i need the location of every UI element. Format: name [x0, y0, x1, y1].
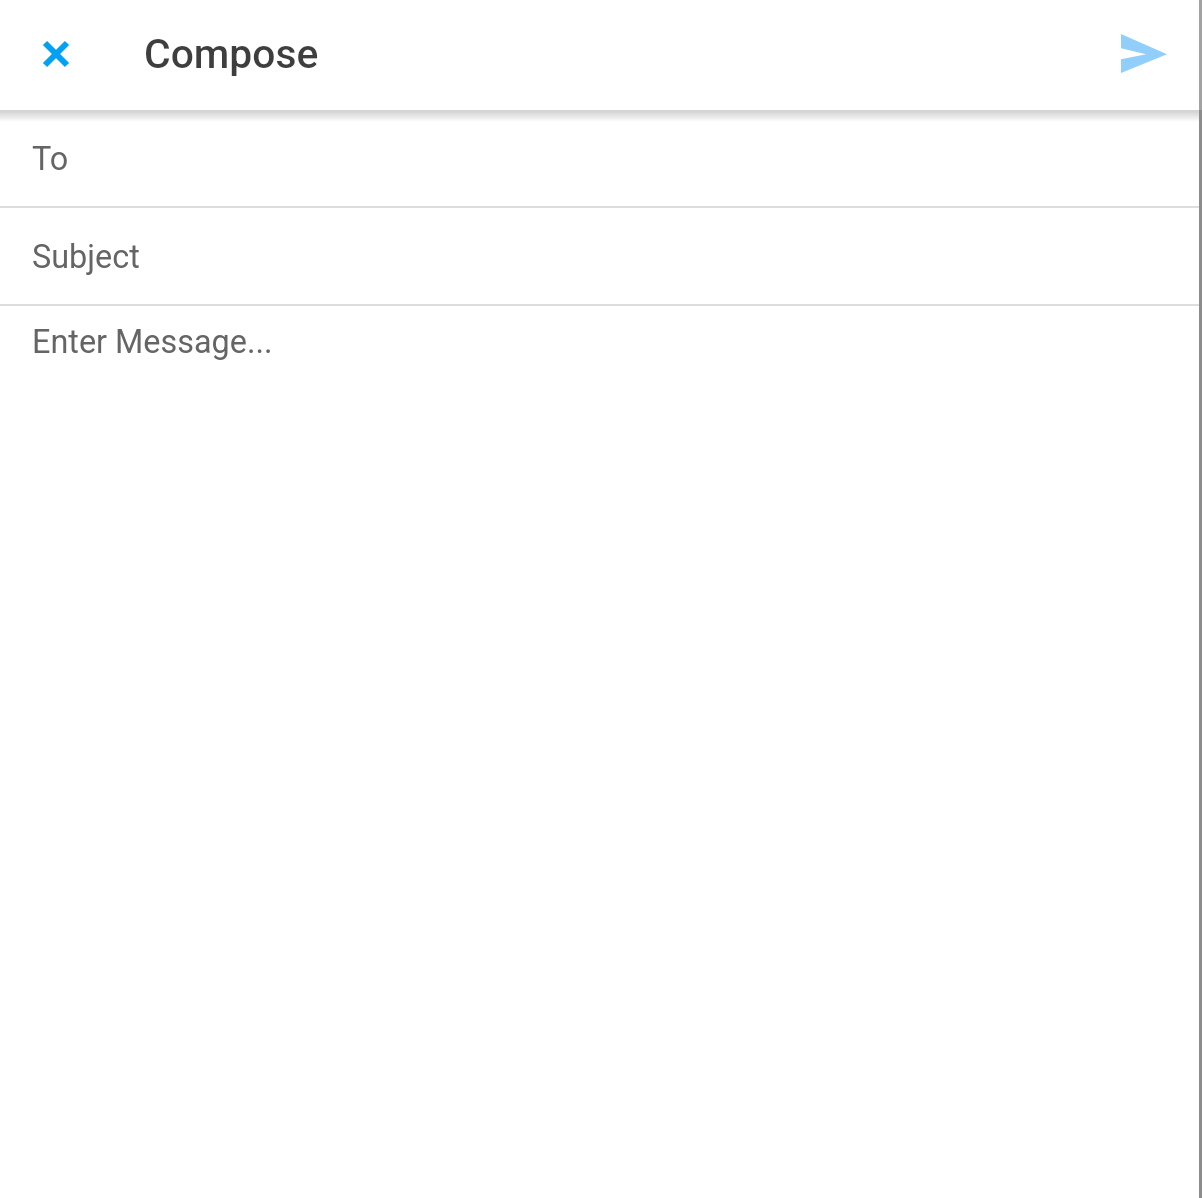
button[interactable]: To	[0, 110, 1202, 206]
button[interactable]: Send	[1088, 0, 1202, 110]
staticText: Subject	[32, 238, 140, 276]
staticText: Enter Message...	[32, 323, 273, 361]
button[interactable]: Enter Message...	[0, 306, 1202, 1198]
staticText: Compose	[144, 30, 319, 78]
button[interactable]: Subject	[0, 208, 1202, 304]
button[interactable]: Close	[0, 0, 112, 110]
staticText: To	[32, 140, 69, 178]
